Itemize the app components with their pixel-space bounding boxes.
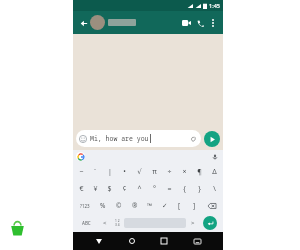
- button[interactable]: ¢: [117, 180, 132, 197]
- button[interactable]: Contact name: [108, 19, 136, 26]
- staticText: [: [178, 201, 181, 210]
- button[interactable]: Home: [125, 234, 139, 248]
- staticText: ™: [147, 201, 153, 210]
- button[interactable]: π: [147, 163, 162, 180]
- staticText: ✓: [162, 202, 168, 210]
- button[interactable]: Back: [92, 234, 106, 248]
- button[interactable]: Video call: [179, 16, 193, 30]
- button[interactable]: Contact photo: [90, 15, 105, 30]
- button[interactable]: Keyboard: [190, 234, 204, 248]
- staticText: <: [103, 219, 107, 227]
- button[interactable]: =: [162, 180, 177, 197]
- button[interactable]: Backspace: [202, 197, 222, 214]
- staticText: ©: [116, 201, 122, 210]
- staticText: ×: [182, 167, 187, 177]
- staticText: 1 2: [115, 219, 120, 223]
- staticText: €: [79, 184, 84, 194]
- button[interactable]: ^: [132, 180, 147, 197]
- staticText: ¶: [197, 167, 202, 177]
- button[interactable]: ?123: [74, 197, 95, 214]
- button[interactable]: ©: [111, 197, 127, 214]
- staticText: ABC: [82, 220, 91, 226]
- button[interactable]: %: [95, 197, 111, 214]
- button[interactable]: >: [186, 215, 199, 231]
- button[interactable]: ABC: [75, 215, 98, 231]
- button[interactable]: ]: [187, 197, 202, 214]
- button[interactable]: °: [147, 180, 162, 197]
- button[interactable]: √: [132, 163, 147, 180]
- button[interactable]: |: [102, 163, 117, 180]
- button[interactable]: ÷: [162, 163, 177, 180]
- staticText: ®: [132, 201, 138, 210]
- button[interactable]: Δ: [207, 163, 222, 180]
- button[interactable]: $: [102, 180, 117, 197]
- staticText: `: [94, 167, 96, 177]
- staticText: 3 4: [115, 223, 120, 227]
- button[interactable]: €: [74, 180, 88, 197]
- button[interactable]: Mi, how are you: [76, 130, 201, 147]
- button[interactable]: Voice input: [210, 152, 220, 162]
- button[interactable]: `: [88, 163, 102, 180]
- staticText: >: [191, 219, 195, 227]
- staticText: Δ: [212, 167, 217, 177]
- button[interactable]: ~: [74, 163, 88, 180]
- staticText: √: [137, 168, 142, 176]
- staticText: ÷: [167, 167, 172, 177]
- button[interactable]: ×: [177, 163, 192, 180]
- staticText: |: [108, 167, 112, 177]
- button[interactable]: ¥: [88, 180, 102, 197]
- button[interactable]: \: [207, 180, 222, 197]
- staticText: °: [153, 184, 156, 194]
- button[interactable]: Attach: [189, 135, 197, 143]
- button[interactable]: }: [192, 180, 207, 197]
- button[interactable]: More options: [207, 17, 219, 29]
- button[interactable]: [: [172, 197, 187, 214]
- button[interactable]: <: [98, 215, 111, 231]
- button[interactable]: •: [117, 163, 132, 180]
- button[interactable]: {: [177, 180, 192, 197]
- button[interactable]: Send: [204, 131, 220, 147]
- staticText: }: [198, 184, 201, 194]
- staticText: 1:45: [209, 2, 220, 9]
- button[interactable]: Back: [77, 17, 89, 29]
- button[interactable]: Shopping bag: [2, 214, 32, 242]
- staticText: •: [123, 167, 126, 177]
- staticText: ¥: [93, 184, 98, 194]
- staticText: Mi, how are you: [90, 134, 149, 143]
- staticText: ~: [79, 167, 84, 177]
- button[interactable]: ™: [142, 197, 157, 214]
- button[interactable]: 1 2: [111, 215, 124, 231]
- button[interactable]: ✓: [157, 197, 172, 214]
- button[interactable]: ®: [127, 197, 142, 214]
- button[interactable]: Recents: [157, 234, 171, 248]
- staticText: ^: [137, 184, 142, 194]
- staticText: \: [213, 184, 216, 194]
- button[interactable]: ¶: [192, 163, 207, 180]
- staticText: ]: [193, 201, 196, 210]
- staticText: {: [183, 184, 186, 194]
- staticText: ¢: [122, 184, 127, 194]
- staticText: =: [167, 184, 172, 194]
- staticText: $: [107, 184, 112, 194]
- staticText: %: [100, 201, 106, 210]
- button[interactable]: Voice call: [193, 16, 207, 30]
- staticText: π: [152, 167, 157, 177]
- button[interactable]: Google search: [76, 152, 85, 161]
- button[interactable]: Enter: [203, 216, 217, 230]
- staticText: ?123: [80, 203, 90, 209]
